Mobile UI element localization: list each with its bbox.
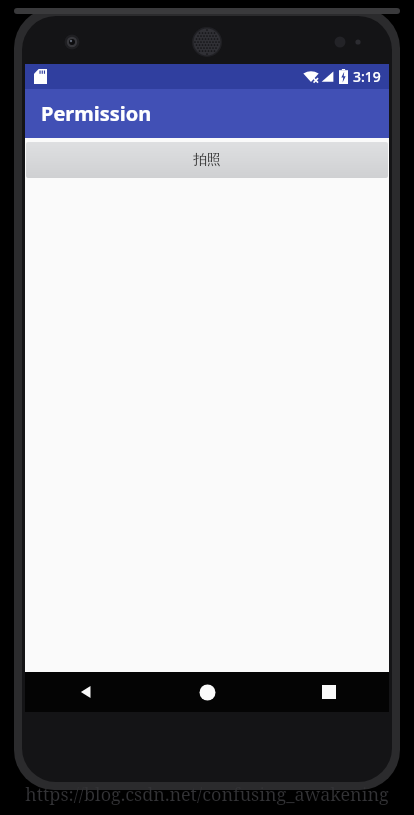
staticText: https://blog.csdn.net/confusing_awakenin… <box>25 782 389 807</box>
staticText: 拍照 <box>193 151 221 169</box>
staticText: Permission <box>41 100 152 127</box>
button[interactable]: Back <box>25 672 147 712</box>
button[interactable]: 拍照 <box>26 142 388 178</box>
button[interactable]: Recent apps <box>268 672 389 712</box>
button[interactable]: Home <box>147 672 268 712</box>
staticText: 3:19 <box>353 67 381 86</box>
